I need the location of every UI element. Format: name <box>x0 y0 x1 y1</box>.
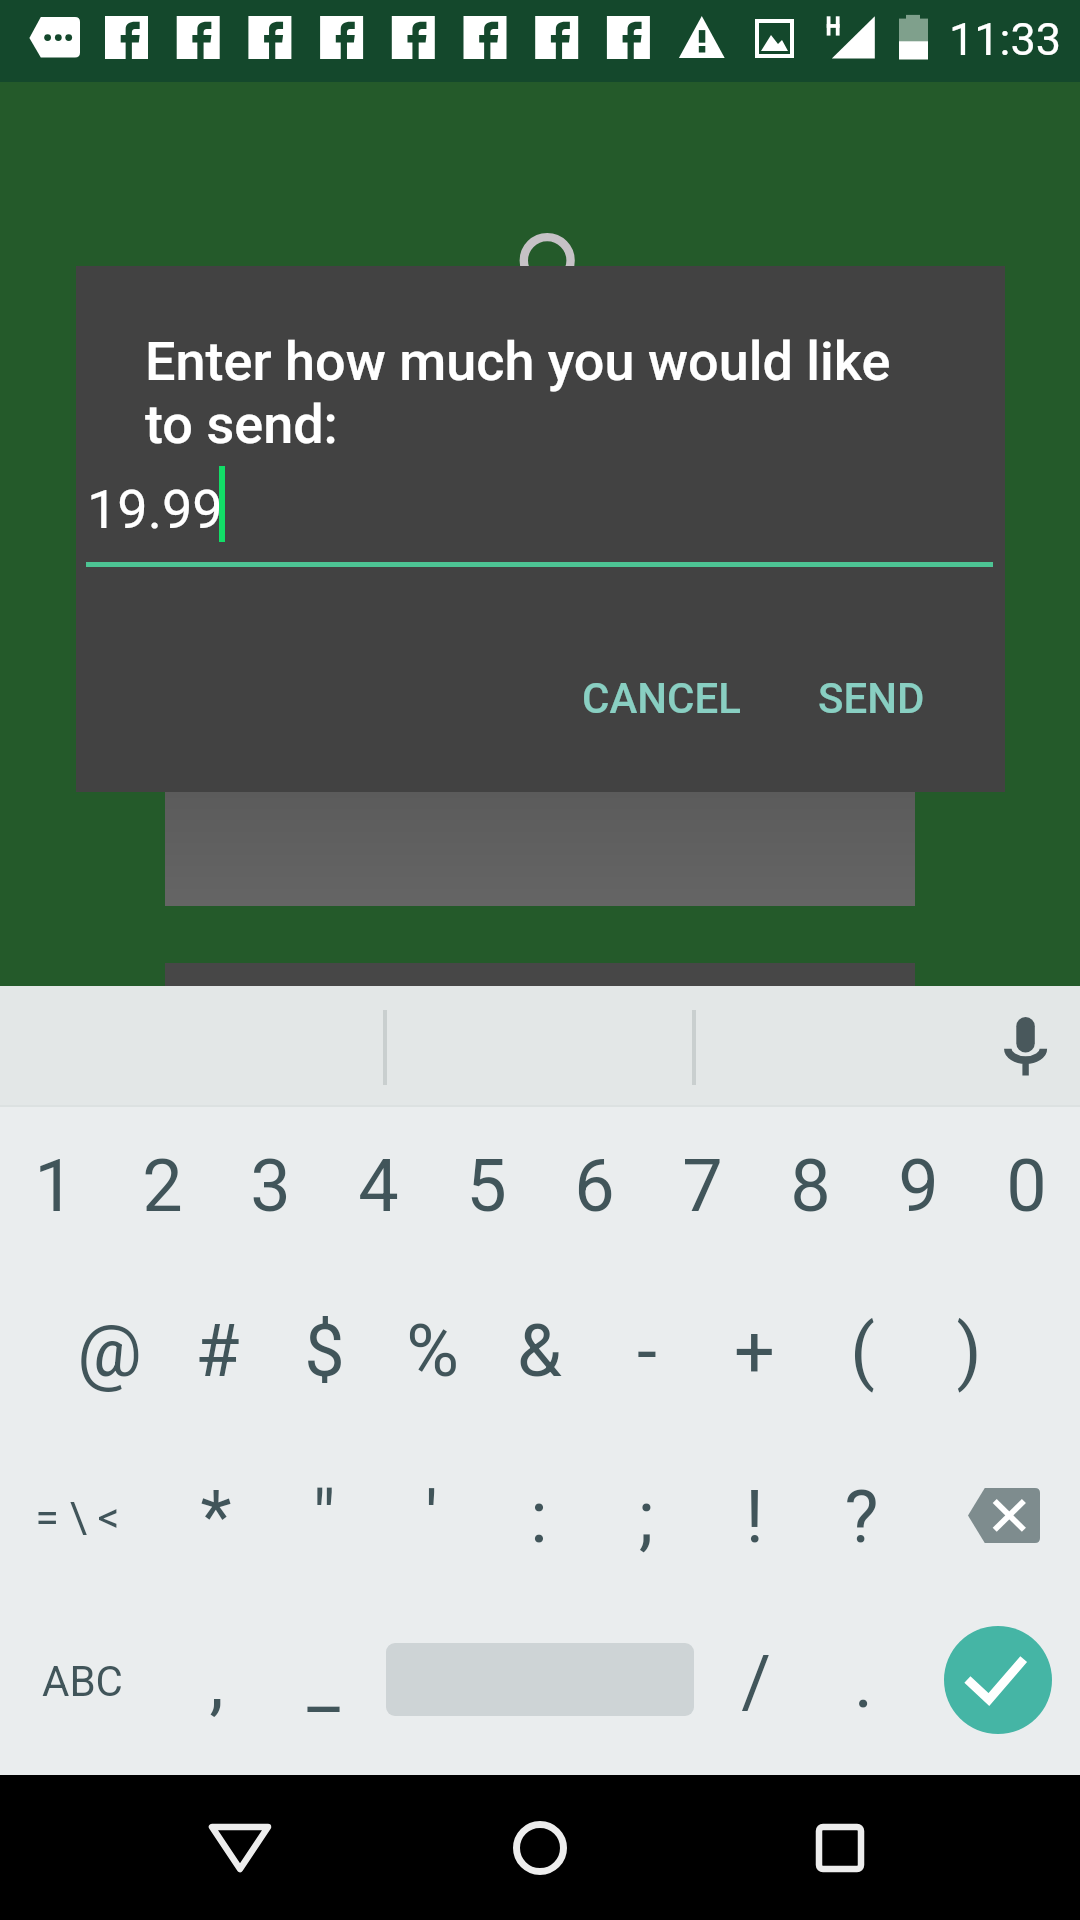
button[interactable]: $ <box>270 1268 378 1433</box>
staticText: ; <box>638 1475 654 1559</box>
staticText: 19.99 <box>87 478 223 541</box>
staticText: / <box>741 1640 771 1724</box>
button[interactable]: " <box>270 1434 378 1599</box>
staticText: CANCEL <box>582 674 741 723</box>
button[interactable]: 2 <box>108 1103 216 1268</box>
button[interactable]: # <box>163 1268 271 1433</box>
staticText: % <box>406 1309 459 1393</box>
staticText: @ <box>77 1309 142 1393</box>
staticText: SEND <box>818 674 925 723</box>
button[interactable]: % <box>378 1268 486 1433</box>
staticText: . <box>854 1640 873 1724</box>
button[interactable]: 5 <box>432 1103 540 1268</box>
button[interactable]: = \ < <box>0 1434 157 1599</box>
staticText: + <box>734 1309 775 1393</box>
staticText: 5 <box>466 1144 507 1228</box>
button[interactable]: @ <box>55 1268 163 1433</box>
button[interactable]: : <box>485 1434 593 1599</box>
staticText: 6 <box>574 1144 615 1228</box>
button[interactable]: Suggestions <box>0 986 1080 1105</box>
button[interactable]: . <box>810 1599 917 1764</box>
staticText: = \ < <box>35 1492 120 1542</box>
staticText: " <box>312 1475 336 1559</box>
button[interactable]: ! <box>700 1434 808 1599</box>
staticText: ! <box>745 1475 764 1559</box>
button[interactable]: * <box>162 1434 270 1599</box>
button[interactable]: Recents <box>770 1778 910 1918</box>
staticText: 8 <box>790 1144 831 1228</box>
staticText: 9 <box>898 1144 939 1228</box>
button[interactable]: ' <box>377 1434 485 1599</box>
button[interactable]: Voice input <box>962 986 1080 1105</box>
staticText: & <box>517 1309 562 1393</box>
button[interactable]: 6 <box>540 1103 648 1268</box>
button[interactable]: Space <box>370 1599 710 1764</box>
staticText: _ <box>307 1640 340 1724</box>
staticText: 3 <box>250 1144 291 1228</box>
staticText: ? <box>844 1475 879 1559</box>
button[interactable]: SEND <box>794 658 949 739</box>
staticText: ABC <box>42 1657 123 1706</box>
button[interactable]: 8 <box>756 1103 864 1268</box>
button[interactable]: 1 <box>0 1103 108 1268</box>
staticText: - <box>637 1309 657 1393</box>
staticText: 0 <box>1006 1144 1047 1228</box>
button[interactable]: 0 <box>972 1103 1080 1268</box>
staticText: # <box>195 1309 240 1393</box>
staticText: Enter how much you would like to send: <box>145 330 945 456</box>
staticText: 2 <box>142 1144 183 1228</box>
staticText: 7 <box>682 1144 723 1228</box>
button[interactable]: & <box>485 1268 593 1433</box>
button[interactable]: ; <box>592 1434 700 1599</box>
button[interactable]: CANCEL <box>558 658 765 739</box>
button[interactable]: ? <box>807 1434 915 1599</box>
staticText: ( <box>850 1309 875 1393</box>
button[interactable]: Backspace <box>945 1434 1075 1599</box>
staticText: 4 <box>358 1144 399 1228</box>
button[interactable]: 7 <box>648 1103 756 1268</box>
button[interactable]: ABC <box>7 1599 157 1764</box>
staticText: * <box>200 1475 232 1559</box>
button[interactable]: 4 <box>324 1103 432 1268</box>
button[interactable]: , <box>163 1599 270 1764</box>
button[interactable]: 9 <box>864 1103 972 1268</box>
staticText: ' <box>425 1475 438 1559</box>
button[interactable]: _ <box>270 1599 377 1764</box>
button[interactable]: ) <box>915 1268 1023 1433</box>
button[interactable]: Back <box>170 1778 310 1918</box>
button[interactable]: - <box>593 1268 701 1433</box>
staticText: ) <box>956 1309 982 1393</box>
staticText: 1 <box>34 1144 75 1228</box>
button[interactable]: ( <box>808 1268 916 1433</box>
button[interactable]: 3 <box>216 1103 324 1268</box>
staticText: : <box>530 1475 548 1559</box>
staticText: $ <box>304 1309 345 1393</box>
button[interactable]: / <box>702 1599 809 1764</box>
staticText: 11:33 <box>949 13 1062 66</box>
button[interactable]: + <box>700 1268 808 1433</box>
staticText: , <box>209 1640 224 1724</box>
button[interactable]: Home <box>470 1778 610 1918</box>
button[interactable]: Enter <box>940 1599 1058 1764</box>
